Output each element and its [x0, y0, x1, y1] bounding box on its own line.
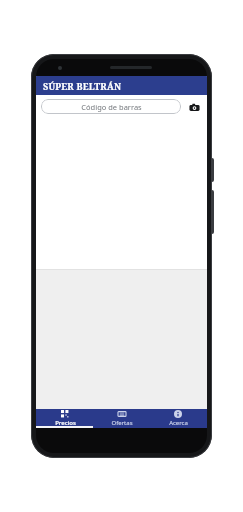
button[interactable]: Escanear con la cámara	[186, 99, 202, 115]
staticText: Código de barras	[81, 102, 142, 112]
button[interactable]: Acerca	[151, 409, 205, 428]
staticText: Acerca	[169, 419, 188, 427]
staticText: SÚPER BELTRÁN	[43, 80, 122, 92]
staticText: Ofertas	[111, 419, 133, 427]
button[interactable]: Código de barras	[41, 99, 181, 114]
button[interactable]: Ofertas	[95, 409, 149, 428]
staticText: Precios	[55, 419, 76, 427]
button[interactable]: Precios	[38, 409, 92, 428]
